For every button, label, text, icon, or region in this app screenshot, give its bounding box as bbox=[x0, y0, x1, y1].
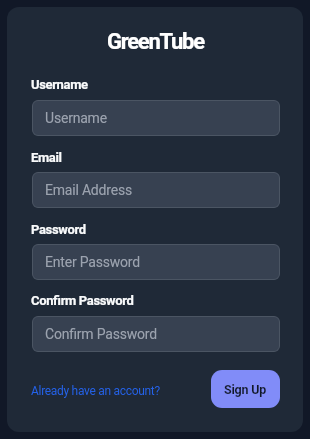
staticText: Sign Up bbox=[224, 382, 267, 397]
staticText: Password bbox=[31, 222, 86, 237]
staticText: Enter Password bbox=[45, 254, 140, 270]
button[interactable]: Username bbox=[32, 100, 280, 136]
staticText: Confirm Password bbox=[45, 326, 157, 342]
button[interactable]: Sign Up bbox=[211, 370, 280, 408]
staticText: Email Address bbox=[45, 182, 132, 198]
button[interactable]: Already have an account? bbox=[31, 384, 160, 398]
staticText: GreenTube bbox=[107, 29, 204, 55]
staticText: Email bbox=[31, 150, 62, 165]
staticText: Username bbox=[31, 77, 88, 92]
button[interactable]: Confirm Password bbox=[32, 316, 280, 352]
button[interactable]: Email Address bbox=[32, 172, 280, 208]
staticText: Confirm Password bbox=[31, 293, 134, 308]
button[interactable]: Enter Password bbox=[32, 244, 280, 280]
staticText: Username bbox=[45, 110, 107, 126]
